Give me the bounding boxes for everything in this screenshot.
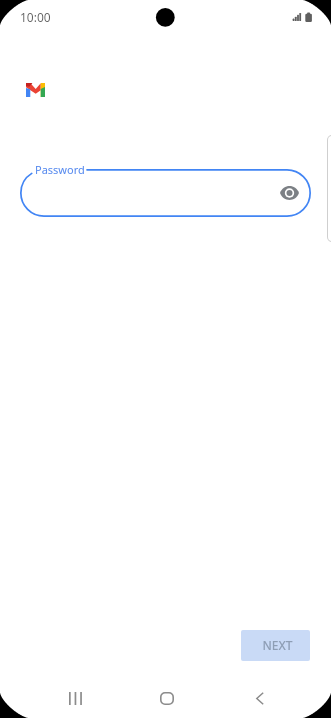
button[interactable]: Password [20, 169, 311, 217]
staticText: NEXT [262, 637, 293, 653]
staticText: Password [35, 162, 85, 177]
button[interactable]: Show password [277, 180, 302, 205]
staticText: 10:00 [20, 9, 51, 25]
button[interactable]: Recents [59, 682, 91, 714]
button[interactable]: Back [244, 682, 276, 714]
button[interactable]: Home [151, 682, 183, 714]
button[interactable]: NEXT [241, 630, 310, 661]
